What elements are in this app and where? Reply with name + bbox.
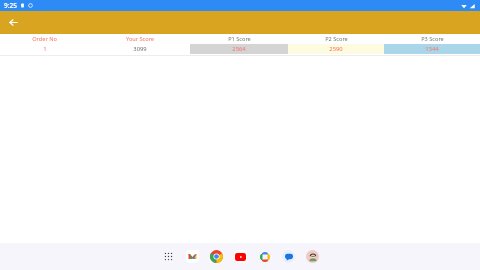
button[interactable]: P1 Score — [190, 34, 288, 44]
staticText: 2564 — [232, 45, 246, 53]
button[interactable]: 2590 — [288, 44, 384, 54]
staticText: 9:25 — [4, 1, 17, 10]
button[interactable]: Your Score — [89, 34, 190, 44]
button[interactable]: 1544 — [384, 44, 480, 54]
button[interactable]: YouTube — [233, 249, 248, 264]
button[interactable]: P2 Score — [288, 34, 384, 44]
staticText: 1544 — [425, 45, 439, 53]
button[interactable]: 3099 — [89, 44, 190, 54]
staticText: P1 Score — [228, 35, 251, 43]
staticText: 2590 — [329, 45, 343, 53]
staticText: Order No — [32, 35, 57, 43]
button[interactable]: Order No — [0, 34, 89, 44]
button[interactable]: Google Photos — [257, 249, 272, 264]
button[interactable]: Gmail — [185, 249, 200, 264]
button[interactable]: Messages — [281, 249, 296, 264]
staticText: P3 Score — [421, 35, 444, 43]
button[interactable]: 1 — [0, 44, 89, 54]
button[interactable]: P3 Score — [384, 34, 480, 44]
button[interactable]: All apps — [161, 249, 176, 264]
button[interactable]: Chrome — [209, 249, 224, 264]
staticText: Your Score — [126, 35, 154, 43]
button[interactable]: Profile — [305, 249, 320, 264]
button[interactable]: Back — [5, 14, 22, 31]
staticText: 3099 — [133, 45, 147, 53]
staticText: P2 Score — [325, 35, 348, 43]
staticText: 1 — [43, 45, 47, 53]
button[interactable]: 2564 — [190, 44, 288, 54]
